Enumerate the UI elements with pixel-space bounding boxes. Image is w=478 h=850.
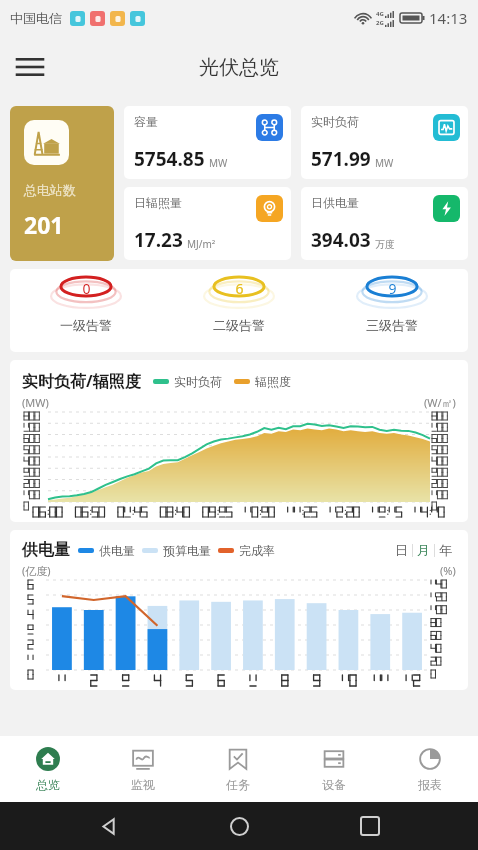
staticText: 394.03 (311, 227, 371, 253)
button[interactable]: Recent apps (348, 804, 392, 848)
staticText: 监视 (131, 777, 155, 792)
button[interactable]: 监视 (95, 736, 190, 802)
staticText: 实时负荷/辐照度 (22, 370, 141, 392)
button[interactable]: 0 (10, 269, 162, 352)
staticText: 实时负荷 (174, 374, 222, 389)
staticText: 任务 (226, 777, 250, 792)
button[interactable]: Back (87, 804, 131, 848)
button[interactable]: 报表 (382, 736, 478, 802)
staticText: 辐照度 (255, 374, 291, 389)
staticText: 6 (235, 279, 244, 298)
staticText: 201 (24, 209, 64, 240)
staticText: 5754.85 (134, 146, 205, 172)
staticText: 三级告警 (366, 317, 418, 333)
staticText: 4G (376, 10, 384, 18)
staticText: (%) (440, 563, 456, 578)
staticText: (亿度) (22, 563, 51, 578)
button[interactable]: Home (217, 804, 261, 848)
staticText: 9 (388, 279, 397, 298)
button[interactable]: 设备 (286, 736, 382, 802)
staticText: 2G (376, 19, 384, 27)
button[interactable]: 日辐照量 (124, 187, 291, 260)
staticText: 年 (439, 542, 452, 558)
button[interactable]: 实时负荷 (301, 106, 468, 179)
staticText: MW (375, 156, 394, 170)
button[interactable]: 日供电量 (301, 187, 468, 260)
staticText: 实时负荷 (311, 114, 359, 129)
staticText: 容量 (134, 114, 158, 129)
staticText: 14:13 (429, 8, 468, 28)
button[interactable]: 6 (162, 269, 315, 352)
staticText: 一级告警 (60, 317, 112, 333)
button[interactable]: 日 (391, 542, 412, 558)
staticText: 日辐照量 (134, 195, 182, 210)
button[interactable]: 容量 (124, 106, 291, 179)
staticText: 万度 (375, 238, 395, 251)
staticText: (W/㎡) (424, 395, 456, 410)
staticText: 供电量 (99, 543, 135, 558)
staticText: 总览 (36, 777, 60, 792)
staticText: 571.99 (311, 146, 371, 172)
staticText: 总电站数 (24, 182, 76, 198)
button[interactable]: 9 (315, 269, 468, 352)
staticText: 0 (82, 279, 91, 298)
button[interactable]: Menu (6, 43, 54, 91)
button[interactable]: 月 (413, 542, 434, 558)
staticText: 设备 (322, 777, 346, 792)
staticText: 日供电量 (311, 195, 359, 210)
staticText: 二级告警 (213, 317, 265, 333)
staticText: 报表 (418, 777, 442, 792)
button[interactable]: 总电站数 (10, 106, 114, 261)
button[interactable]: 任务 (190, 736, 286, 802)
staticText: 完成率 (239, 543, 275, 558)
staticText: MW (209, 156, 228, 170)
staticText: 供电量 (22, 540, 70, 560)
staticText: 日 (395, 542, 408, 558)
staticText: 月 (417, 542, 430, 558)
staticText: (MW) (22, 395, 49, 410)
staticText: 17.23 (134, 227, 183, 253)
staticText: 中国电信 (10, 10, 62, 26)
staticText: 预算电量 (163, 543, 211, 558)
staticText: MJ/m² (187, 237, 216, 251)
button[interactable]: 总览 (0, 736, 95, 802)
button[interactable]: 年 (435, 542, 456, 558)
staticText: 光伏总览 (199, 55, 279, 80)
